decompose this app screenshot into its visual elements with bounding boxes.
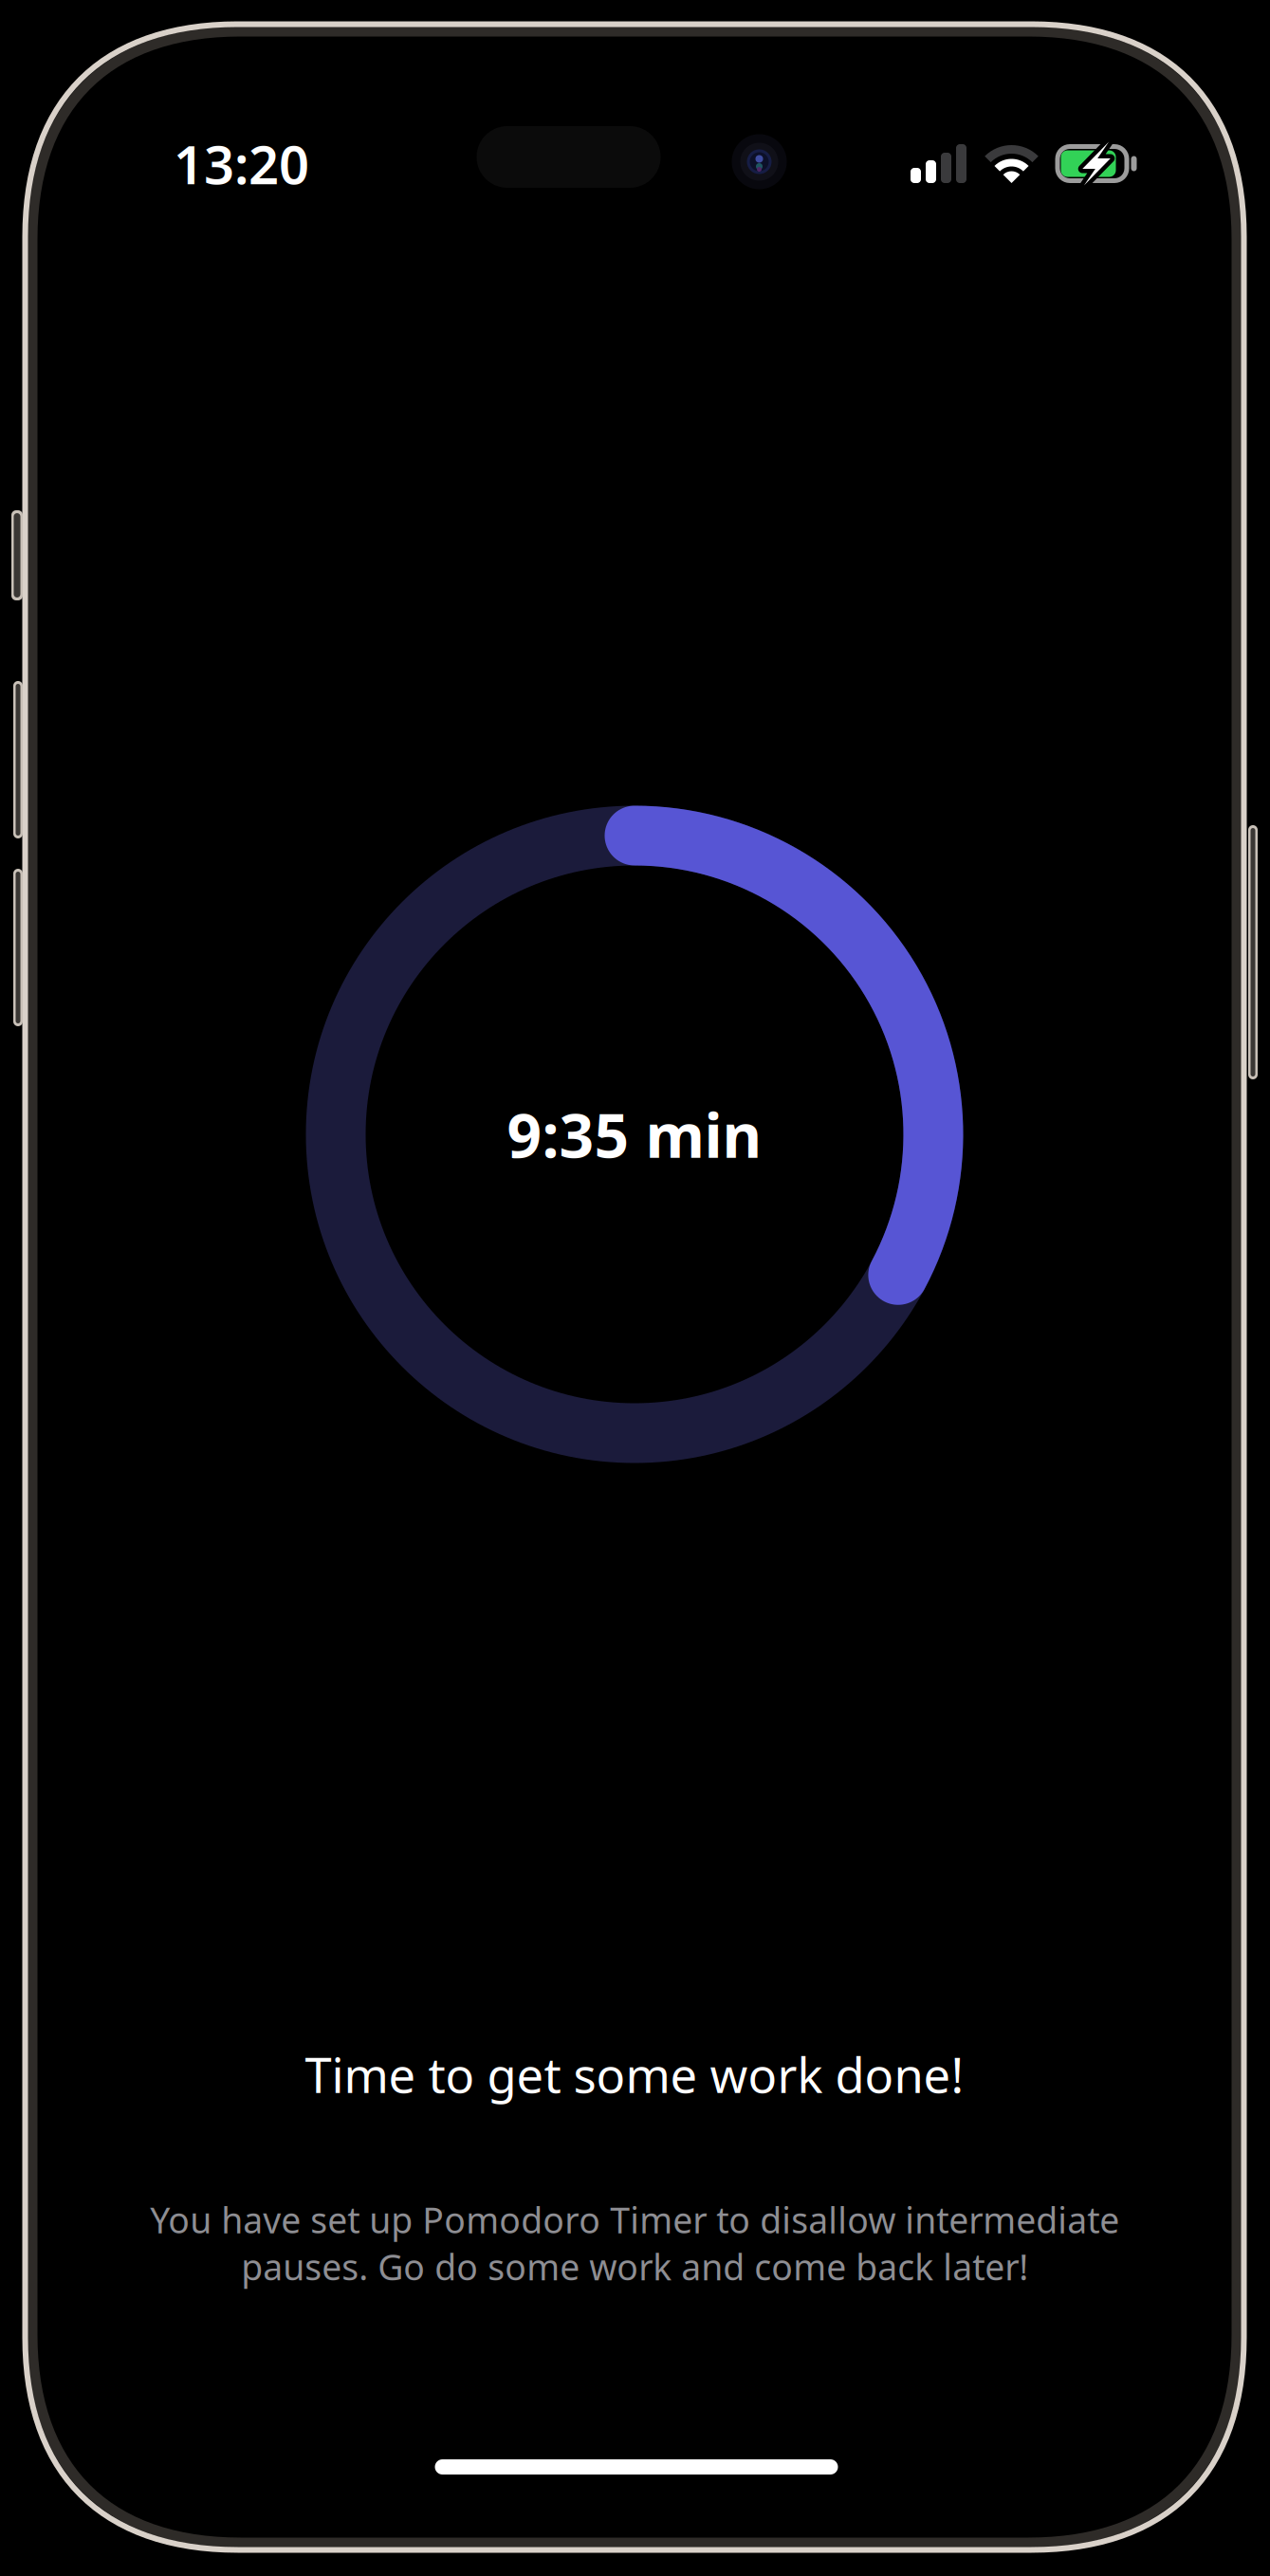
staticText: 13:20 <box>174 128 309 199</box>
button[interactable]: 9:35 min remaining in this focus session <box>306 806 963 1463</box>
staticText: 9:35 min <box>507 1094 762 1175</box>
staticText: Time to get some work done! <box>305 2042 964 2106</box>
staticText: You have set up Pomodoro Timer to disall… <box>150 2196 1119 2290</box>
